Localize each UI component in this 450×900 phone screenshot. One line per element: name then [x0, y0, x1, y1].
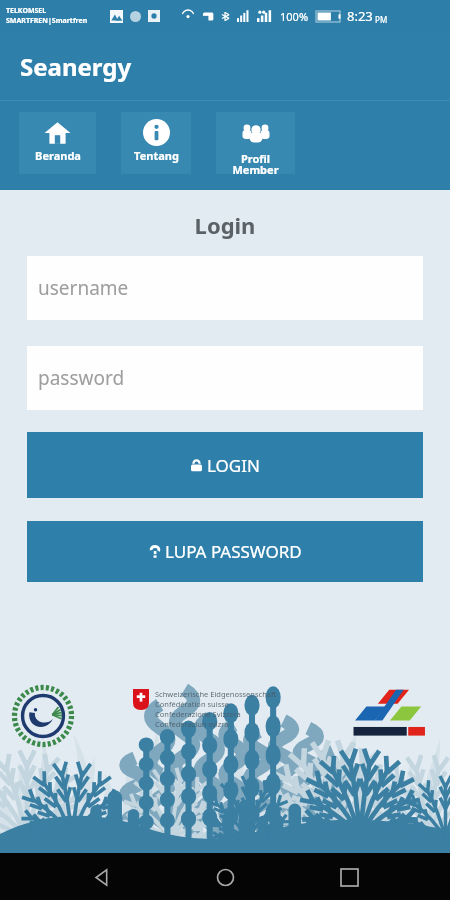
staticText: password	[38, 365, 125, 391]
staticText: Profil Member	[232, 151, 279, 174]
button[interactable]: LOGIN	[27, 432, 423, 498]
button[interactable]: Home	[203, 855, 247, 899]
staticText: Confédération suisse	[155, 699, 230, 709]
staticText: username	[38, 275, 129, 301]
staticText: LUPA PASSWORD	[165, 540, 302, 563]
staticText: Confederazione Svizzera	[155, 709, 241, 719]
button[interactable]: Back	[80, 855, 124, 899]
button[interactable]: Tentang	[121, 112, 191, 174]
button[interactable]: LUPA PASSWORD	[27, 521, 423, 582]
staticText: TELKOMSEL	[6, 6, 47, 16]
button[interactable]: Beranda	[19, 112, 96, 174]
staticText: Tentang	[134, 148, 179, 163]
staticText: Schweizerische Eidgenossenschaft	[155, 689, 277, 699]
button[interactable]: password	[27, 346, 423, 410]
staticText: Confederaziun svizra	[155, 719, 229, 729]
button[interactable]: username	[27, 256, 423, 320]
staticText: PM	[373, 14, 388, 25]
staticText: Login	[0, 210, 450, 240]
staticText: 100%	[280, 9, 309, 24]
staticText: Beranda	[35, 148, 81, 163]
staticText: SMARTFREN|Smartfren	[6, 16, 88, 26]
staticText: Seanergy	[20, 50, 132, 83]
button[interactable]: Recent apps	[327, 855, 371, 899]
button[interactable]: Profil Member	[216, 112, 295, 174]
staticText: 8:23	[347, 7, 373, 25]
staticText: LOGIN	[207, 454, 260, 477]
